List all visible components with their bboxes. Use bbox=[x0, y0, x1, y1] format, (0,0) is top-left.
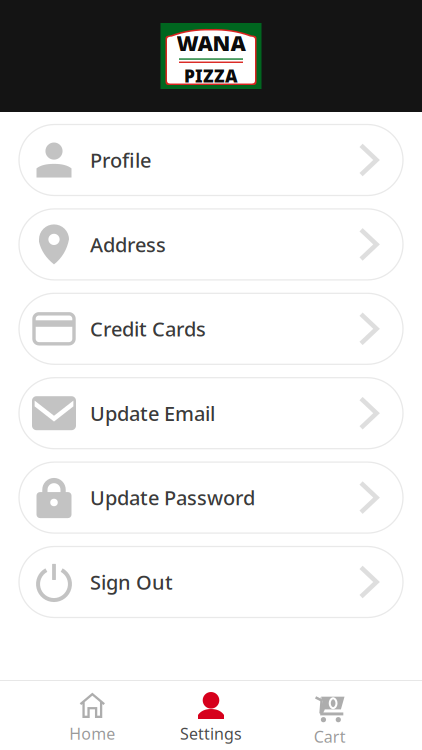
button[interactable]: Update Password bbox=[19, 462, 403, 533]
staticText: WANA bbox=[176, 29, 245, 57]
staticText: Sign Out bbox=[90, 569, 173, 595]
staticText: Settings bbox=[180, 723, 242, 744]
button[interactable]: Home bbox=[33, 681, 152, 750]
button[interactable]: Update Email bbox=[19, 378, 403, 449]
staticText: Update Email bbox=[90, 400, 215, 426]
staticText: Cart bbox=[314, 726, 346, 747]
button[interactable]: Credit Cards bbox=[19, 293, 403, 364]
button[interactable]: Sign Out bbox=[19, 546, 403, 617]
button[interactable]: Profile bbox=[19, 124, 403, 195]
button[interactable]: Settings bbox=[152, 681, 270, 750]
staticText: Credit Cards bbox=[90, 315, 206, 342]
staticText: Update Password bbox=[90, 484, 255, 511]
staticText: Home bbox=[69, 723, 115, 744]
button[interactable]: Address bbox=[19, 209, 403, 280]
button[interactable]: Cart bbox=[270, 681, 389, 750]
staticText: Profile bbox=[90, 147, 151, 173]
staticText: Address bbox=[90, 231, 166, 258]
staticText: PIZZA bbox=[184, 64, 238, 87]
